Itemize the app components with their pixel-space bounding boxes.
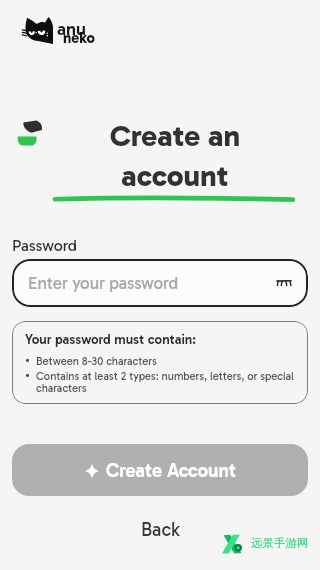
button[interactable]: Create Account [12,444,308,496]
staticText: Enter your password [28,273,179,293]
staticText: Create an account [30,118,320,194]
button[interactable]: Back [127,512,194,547]
button[interactable]: Show password [272,271,296,295]
staticText: Back [141,518,180,541]
staticText: 远景手游网 [251,536,309,550]
staticText: neko [63,29,95,47]
button[interactable]: Enter your password [12,259,308,307]
staticText: Password [12,236,77,255]
staticText: Contains at least 2 types: numbers, lett… [36,369,300,395]
staticText: Between 8-30 characters [36,354,157,367]
staticText: Your password must contain: [25,331,197,347]
staticText: Create Account [106,459,236,482]
staticText: anu [57,18,86,40]
